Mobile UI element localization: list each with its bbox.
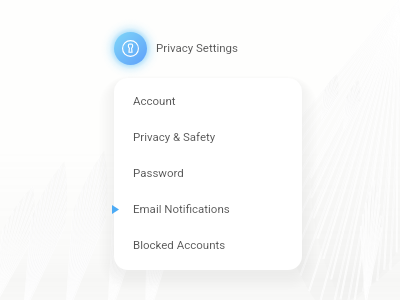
staticText: Blocked Accounts: [133, 238, 226, 251]
staticText: Privacy & Safety: [133, 130, 216, 143]
staticText: Password: [133, 166, 184, 179]
staticText: Email Notifications: [133, 202, 230, 215]
button[interactable]: Privacy & Safety: [114, 118, 302, 154]
button[interactable]: Password: [114, 154, 302, 190]
staticText: Privacy Settings: [156, 41, 238, 54]
staticText: Account: [133, 94, 176, 107]
button[interactable]: Blocked Accounts: [114, 226, 302, 262]
button[interactable]: Privacy lock: [114, 32, 147, 65]
button[interactable]: Email Notifications: [114, 190, 302, 226]
button[interactable]: Account: [114, 82, 302, 118]
